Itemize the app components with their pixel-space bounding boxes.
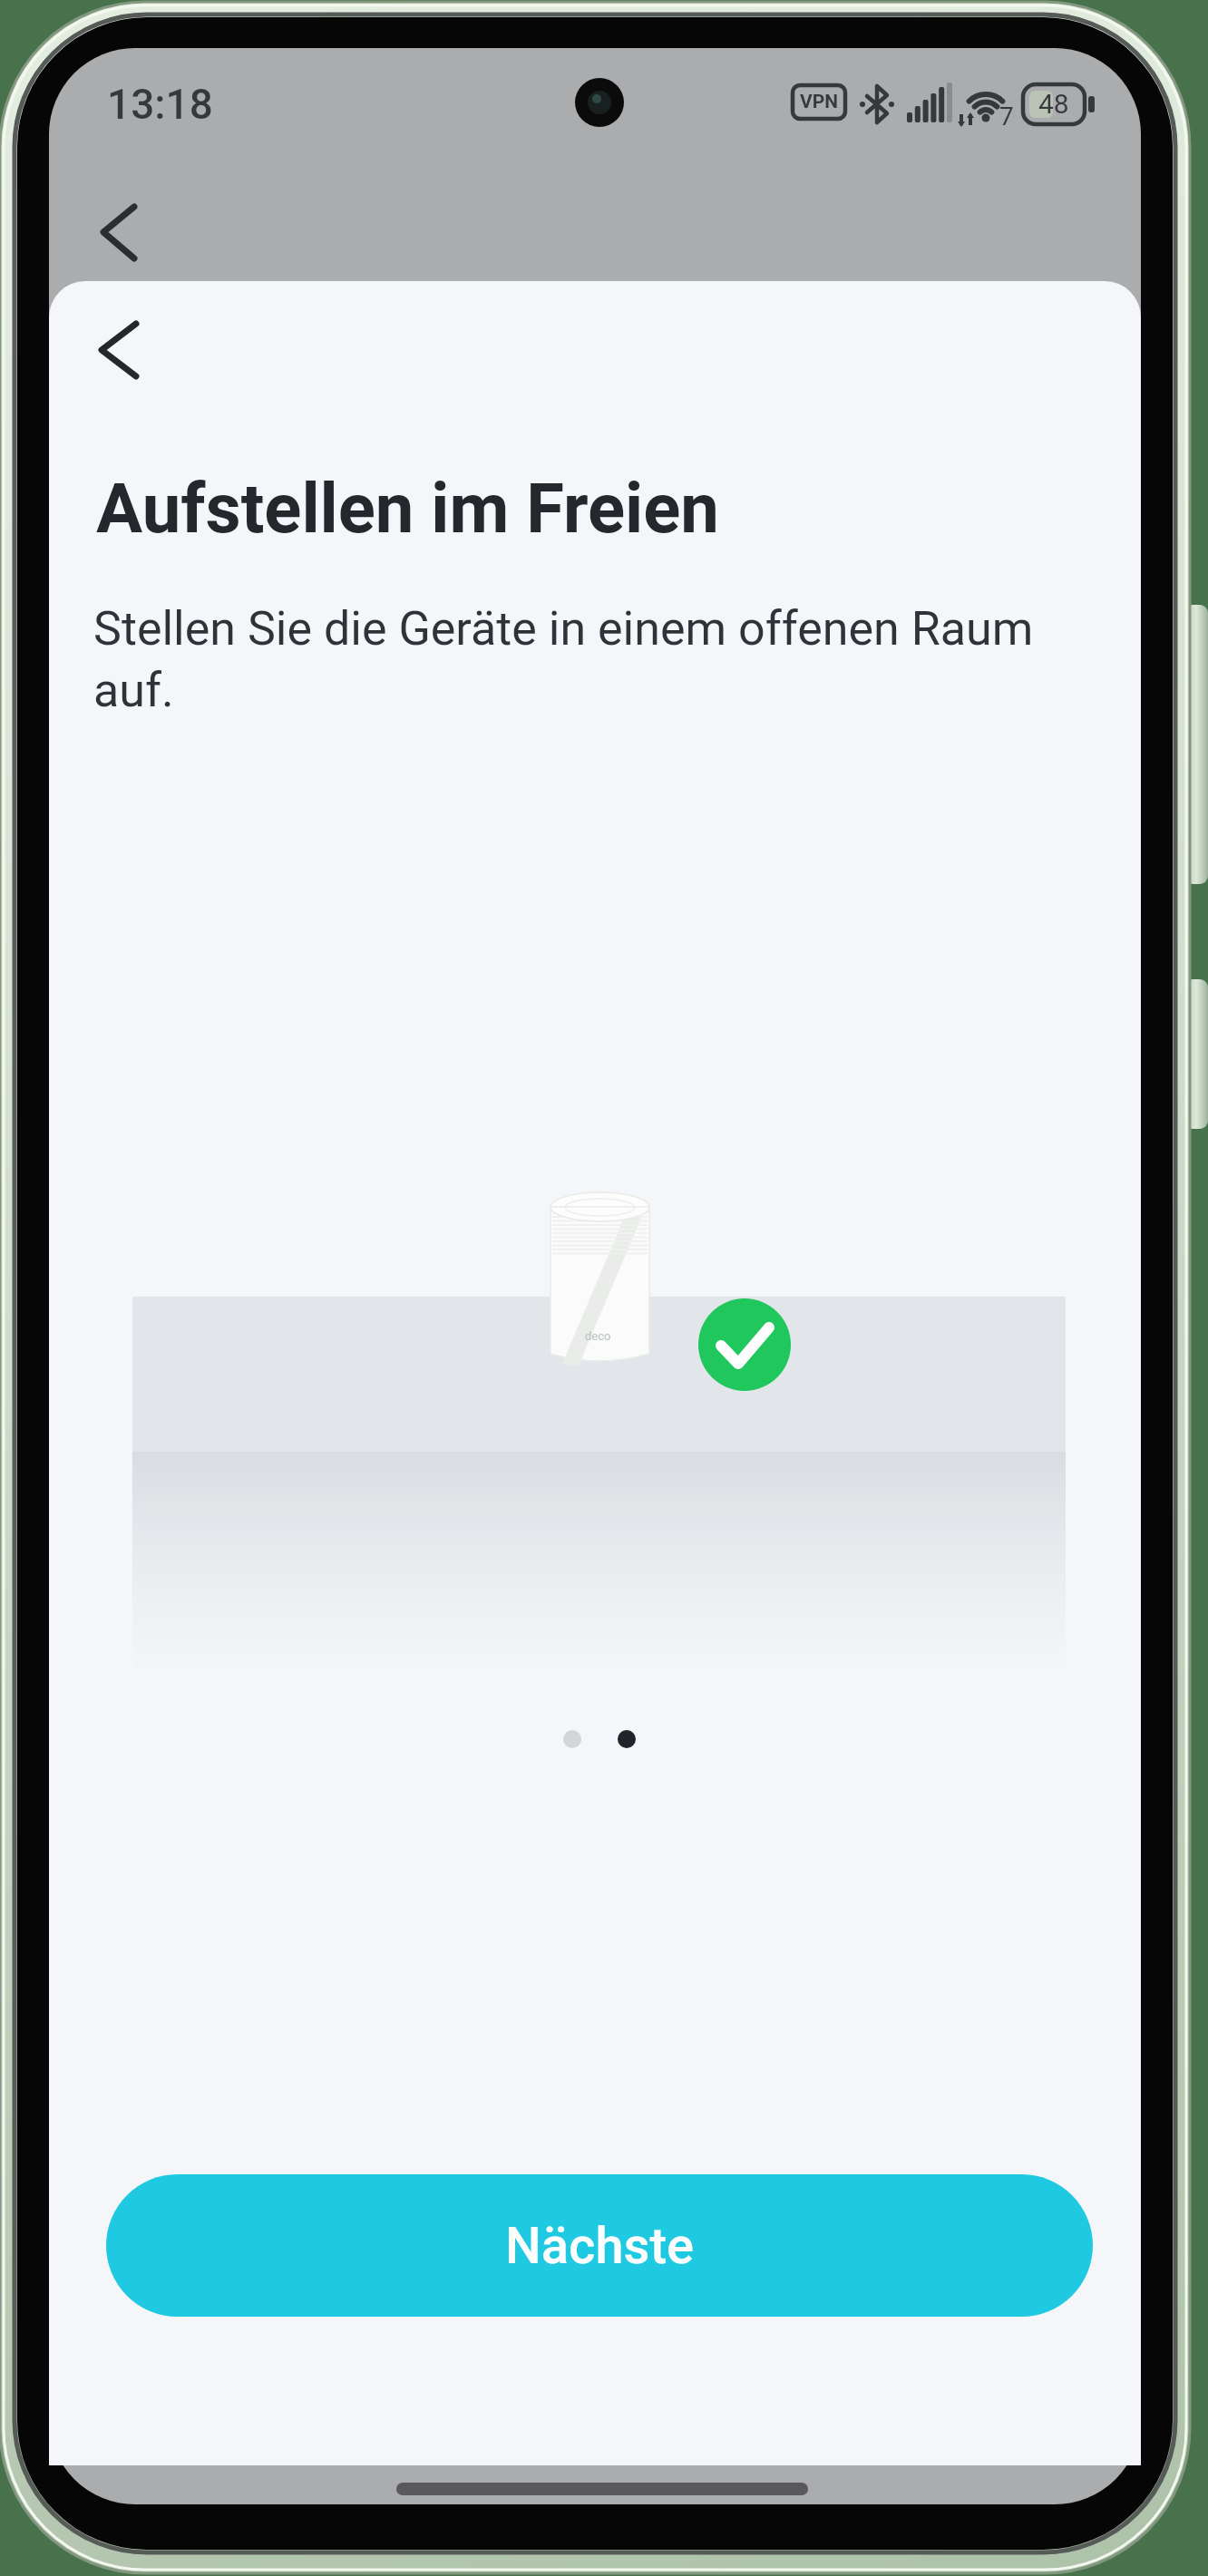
staticText: Nächste	[505, 2216, 695, 2276]
staticText: 13:18	[107, 80, 213, 129]
button[interactable]: Nächste	[106, 2174, 1093, 2317]
staticText: deco	[585, 1329, 611, 1343]
staticText: 48	[1038, 88, 1069, 120]
staticText: Stellen Sie die Geräte in einem offenen …	[93, 601, 1068, 746]
staticText: Aufstellen im Freien	[96, 468, 719, 549]
staticText: 7	[999, 102, 1014, 131]
button[interactable]	[83, 308, 165, 390]
staticText: VPN	[800, 91, 839, 113]
